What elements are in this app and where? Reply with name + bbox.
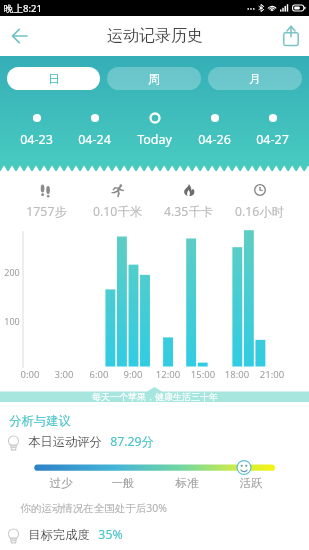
staticText: Today xyxy=(137,131,172,148)
staticText: 200 xyxy=(4,266,20,278)
button[interactable]: Today xyxy=(131,110,178,150)
staticText: 分析与建议 xyxy=(9,413,71,428)
staticText: 本日运动评分 xyxy=(28,434,102,449)
staticText: 04-24 xyxy=(78,131,111,148)
button[interactable]: 0.16小时 xyxy=(224,183,295,220)
staticText: 15:00 xyxy=(188,368,218,381)
button[interactable]: 0.10千米 xyxy=(82,183,153,220)
button[interactable]: 日 xyxy=(7,67,100,90)
button[interactable]: Back xyxy=(4,21,34,51)
staticText: 21:00 xyxy=(257,368,287,381)
button[interactable]: 04-26 xyxy=(192,110,237,150)
staticText: 你的运动情况在全国处于后30% xyxy=(20,501,167,515)
staticText: 过少 xyxy=(41,476,81,490)
staticText: 运动记录历史 xyxy=(107,26,203,46)
staticText: 每天一个苹果，健康生活三十年 xyxy=(92,391,218,402)
button[interactable]: 本日运动评分 xyxy=(8,433,154,450)
staticText: 1757步 xyxy=(26,203,67,220)
button[interactable]: 4.35千卡 xyxy=(153,183,224,220)
staticText: 晚上8:21 xyxy=(4,2,42,15)
staticText: 目标完成度 xyxy=(28,527,90,542)
button[interactable]: 月 xyxy=(208,67,302,90)
staticText: 6:00 xyxy=(84,368,114,381)
staticText: 0.10千米 xyxy=(93,203,142,220)
staticText: 35% xyxy=(98,526,123,543)
staticText: 周 xyxy=(148,71,160,86)
staticText: 日 xyxy=(48,71,60,86)
staticText: 标准 xyxy=(167,476,207,490)
staticText: 18:00 xyxy=(222,368,252,381)
button[interactable]: 目标完成度 xyxy=(8,526,123,543)
button[interactable]: 周 xyxy=(107,67,201,90)
staticText: 100 xyxy=(4,315,20,327)
staticText: 04-26 xyxy=(198,131,231,148)
staticText: 0.16小时 xyxy=(235,203,284,220)
staticText: 04-23 xyxy=(20,131,53,148)
staticText: 4.35千卡 xyxy=(164,203,213,220)
staticText: 一般 xyxy=(103,476,143,490)
staticText: 87.29分 xyxy=(110,433,154,450)
staticText: 活跃 xyxy=(231,476,271,490)
button[interactable]: Share xyxy=(277,22,305,50)
staticText: 04-27 xyxy=(256,131,289,148)
button[interactable]: 1757步 xyxy=(10,183,82,220)
staticText: 月 xyxy=(249,71,261,86)
staticText: 9:00 xyxy=(118,368,148,381)
button[interactable]: 04-27 xyxy=(250,110,295,150)
staticText: 3:00 xyxy=(49,368,79,381)
staticText: 12:00 xyxy=(153,368,183,381)
button[interactable]: 04-24 xyxy=(72,110,117,150)
staticText: 0:00 xyxy=(15,368,45,381)
button[interactable]: 04-23 xyxy=(14,110,59,150)
